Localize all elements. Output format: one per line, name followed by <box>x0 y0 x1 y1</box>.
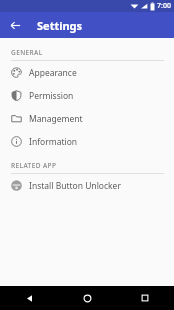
staticText: RELATED APP <box>11 161 57 170</box>
button[interactable]: Appearance <box>0 61 174 84</box>
staticText: Permission <box>29 90 74 102</box>
button[interactable]: Permission <box>0 84 174 107</box>
button[interactable]: Home <box>58 286 116 310</box>
button[interactable]: Management <box>0 107 174 130</box>
staticText: Install Button Unlocker <box>29 180 121 192</box>
button[interactable]: Recents <box>116 286 174 310</box>
staticText: Appearance <box>29 67 77 79</box>
button[interactable]: Information <box>0 130 174 153</box>
staticText: GENERAL <box>11 48 43 57</box>
staticText: 7:00 <box>157 1 171 11</box>
staticText: Information <box>29 136 78 148</box>
staticText: Management <box>29 113 83 125</box>
button[interactable]: Back <box>4 14 26 36</box>
staticText: Settings <box>37 18 83 33</box>
button[interactable]: Install Button Unlocker <box>0 174 174 197</box>
button[interactable]: Back <box>0 286 58 310</box>
